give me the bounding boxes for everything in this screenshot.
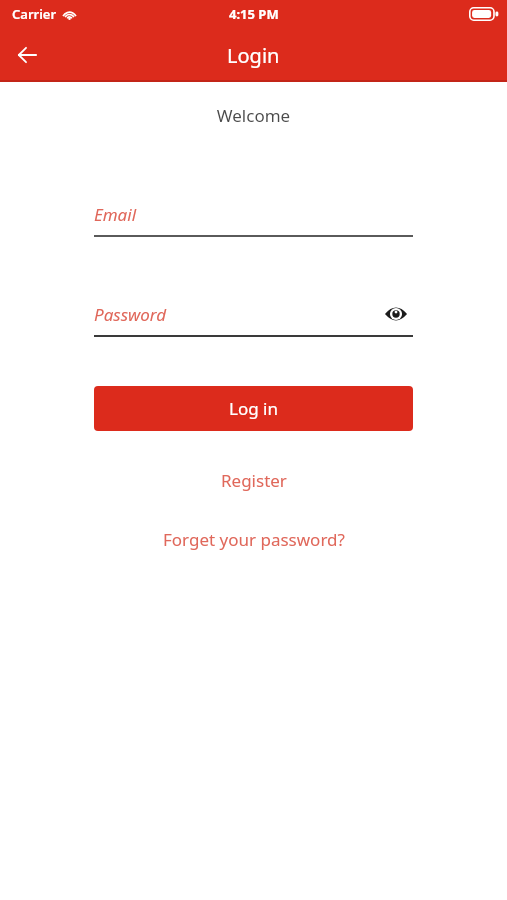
button[interactable]: Email [94, 193, 413, 235]
staticText: Log in [229, 397, 278, 420]
staticText: Login [227, 42, 280, 69]
button[interactable]: Forget your password? [147, 524, 361, 555]
button[interactable]: Log in [94, 386, 413, 431]
staticText: Password [94, 303, 167, 326]
staticText: Carrier [12, 5, 57, 23]
button[interactable]: Password [94, 293, 413, 335]
staticText: Forget your password? [163, 528, 345, 551]
staticText: Email [94, 203, 137, 226]
button[interactable]: Register [205, 465, 303, 496]
staticText: Register [221, 469, 287, 492]
staticText: Welcome [0, 104, 507, 127]
button[interactable]: Back [0, 28, 54, 82]
button[interactable]: Show password [379, 297, 413, 331]
staticText: 4:15 PM [229, 5, 279, 23]
